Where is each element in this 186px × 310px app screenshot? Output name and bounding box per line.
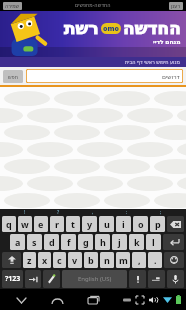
staticText: מנוע חיפוש ראשי דף הבית: [125, 59, 180, 66]
staticText: f: [67, 236, 71, 248]
staticText: w: [21, 218, 29, 230]
button[interactable]: l: [146, 234, 161, 250]
staticText: מנחם לדיי: [153, 38, 181, 46]
staticText: חפש: [8, 74, 18, 80]
button[interactable]: Recents: [82, 291, 104, 309]
staticText: d: [49, 236, 55, 248]
button[interactable]: q: [2, 216, 16, 232]
button[interactable]: s: [27, 234, 42, 250]
button[interactable]: ,: [132, 252, 146, 268]
button[interactable]: key: [167, 216, 184, 232]
button[interactable]: r: [50, 216, 64, 232]
staticText: o: [138, 218, 144, 230]
staticText: n: [104, 254, 110, 266]
staticText: l: [152, 236, 155, 248]
staticText: English (US): [78, 275, 112, 283]
button[interactable]: p: [150, 216, 165, 232]
staticText: a: [15, 236, 21, 248]
staticText: שמירה: [5, 3, 20, 9]
staticText: ,: [92, 209, 94, 215]
button[interactable]: key: [148, 270, 165, 288]
button[interactable]: key: [167, 270, 184, 288]
button[interactable]: key: [43, 270, 60, 288]
staticText: ;: [160, 209, 162, 215]
staticText: omo: [103, 24, 119, 34]
staticText: e: [38, 218, 44, 230]
button[interactable]: n: [100, 252, 114, 268]
button[interactable]: d: [44, 234, 59, 250]
staticText: i: [122, 218, 125, 230]
staticText: c: [57, 254, 62, 266]
button[interactable]: key: [129, 270, 146, 288]
staticText: החדשה-מחפשים: [75, 2, 111, 9]
staticText: ?: [57, 209, 60, 215]
staticText: s: [32, 236, 37, 248]
button[interactable]: .: [148, 252, 162, 268]
button[interactable]: Hide keyboard: [10, 291, 32, 309]
staticText: r: [55, 218, 60, 230]
button[interactable]: i: [116, 216, 131, 232]
button[interactable]: English (US): [62, 270, 127, 288]
button[interactable]: h: [95, 234, 110, 250]
button[interactable]: key: [2, 252, 21, 268]
staticText: p: [155, 218, 161, 230]
button[interactable]: j: [112, 234, 127, 250]
staticText: :: [126, 209, 128, 215]
button[interactable]: c: [53, 252, 66, 268]
button[interactable]: w: [18, 216, 32, 232]
button[interactable]: חפש: [3, 70, 23, 83]
button[interactable]: e: [34, 216, 48, 232]
staticText: q: [6, 218, 12, 230]
button[interactable]: y: [82, 216, 97, 232]
button[interactable]: k: [129, 234, 144, 250]
staticText: h: [100, 236, 106, 248]
staticText: !: [24, 209, 26, 215]
staticText: y: [87, 218, 93, 230]
staticText: רשת: [64, 18, 99, 38]
staticText: החדשה: [123, 18, 181, 38]
button[interactable]: a: [10, 234, 25, 250]
button[interactable]: t: [66, 216, 80, 232]
button[interactable]: g: [78, 234, 93, 250]
staticText: g: [83, 236, 89, 248]
staticText: b: [88, 254, 94, 266]
staticText: דרושים: [162, 73, 180, 80]
staticText: ?123: [5, 274, 21, 284]
button[interactable]: z: [23, 252, 36, 268]
staticText: z: [27, 254, 32, 266]
button[interactable]: key: [163, 234, 184, 250]
staticText: m: [119, 254, 128, 266]
button[interactable]: b: [84, 252, 98, 268]
staticText: ,: [138, 254, 141, 266]
staticText: v: [72, 254, 78, 266]
button[interactable]: u: [99, 216, 114, 232]
button[interactable]: Home: [46, 291, 68, 309]
staticText: k: [134, 236, 140, 248]
staticText: t: [71, 218, 75, 230]
button[interactable]: f: [61, 234, 76, 250]
button[interactable]: key: [164, 252, 184, 268]
button[interactable]: x: [38, 252, 51, 268]
button[interactable]: ?123: [2, 270, 23, 288]
button[interactable]: m: [116, 252, 130, 268]
staticText: רענן: [171, 3, 181, 9]
button[interactable]: key: [25, 270, 41, 288]
staticText: .: [154, 254, 157, 266]
staticText: j: [118, 236, 121, 248]
staticText: u: [104, 218, 110, 230]
button[interactable]: דרושים: [26, 69, 183, 83]
staticText: x: [42, 254, 48, 266]
button[interactable]: v: [68, 252, 82, 268]
button[interactable]: o: [133, 216, 148, 232]
